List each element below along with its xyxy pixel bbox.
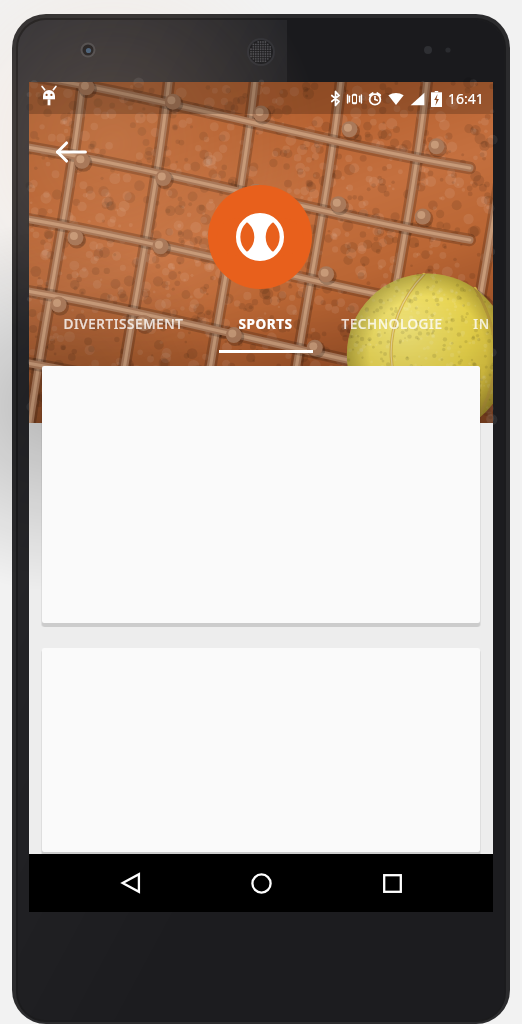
button[interactable]: Sports logo bbox=[208, 185, 312, 289]
button[interactable]: SPORTS bbox=[218, 300, 313, 362]
button[interactable]: INT bbox=[470, 300, 493, 362]
button[interactable]: TECHNOLOGIE bbox=[313, 300, 470, 362]
staticText: DIVERTISSEMENT bbox=[63, 315, 184, 333]
button[interactable]: Back bbox=[102, 854, 160, 912]
button[interactable] bbox=[41, 366, 481, 625]
button[interactable]: DIVERTISSEMENT bbox=[29, 300, 218, 362]
staticText: TECHNOLOGIE bbox=[341, 315, 443, 333]
button[interactable]: Back bbox=[47, 128, 95, 176]
staticText: INT bbox=[470, 315, 493, 333]
button[interactable] bbox=[41, 648, 481, 854]
staticText: 16:41 bbox=[448, 89, 484, 108]
button[interactable]: Home bbox=[232, 854, 290, 912]
button[interactable]: Recents bbox=[363, 854, 421, 912]
staticText: SPORTS bbox=[238, 315, 293, 333]
